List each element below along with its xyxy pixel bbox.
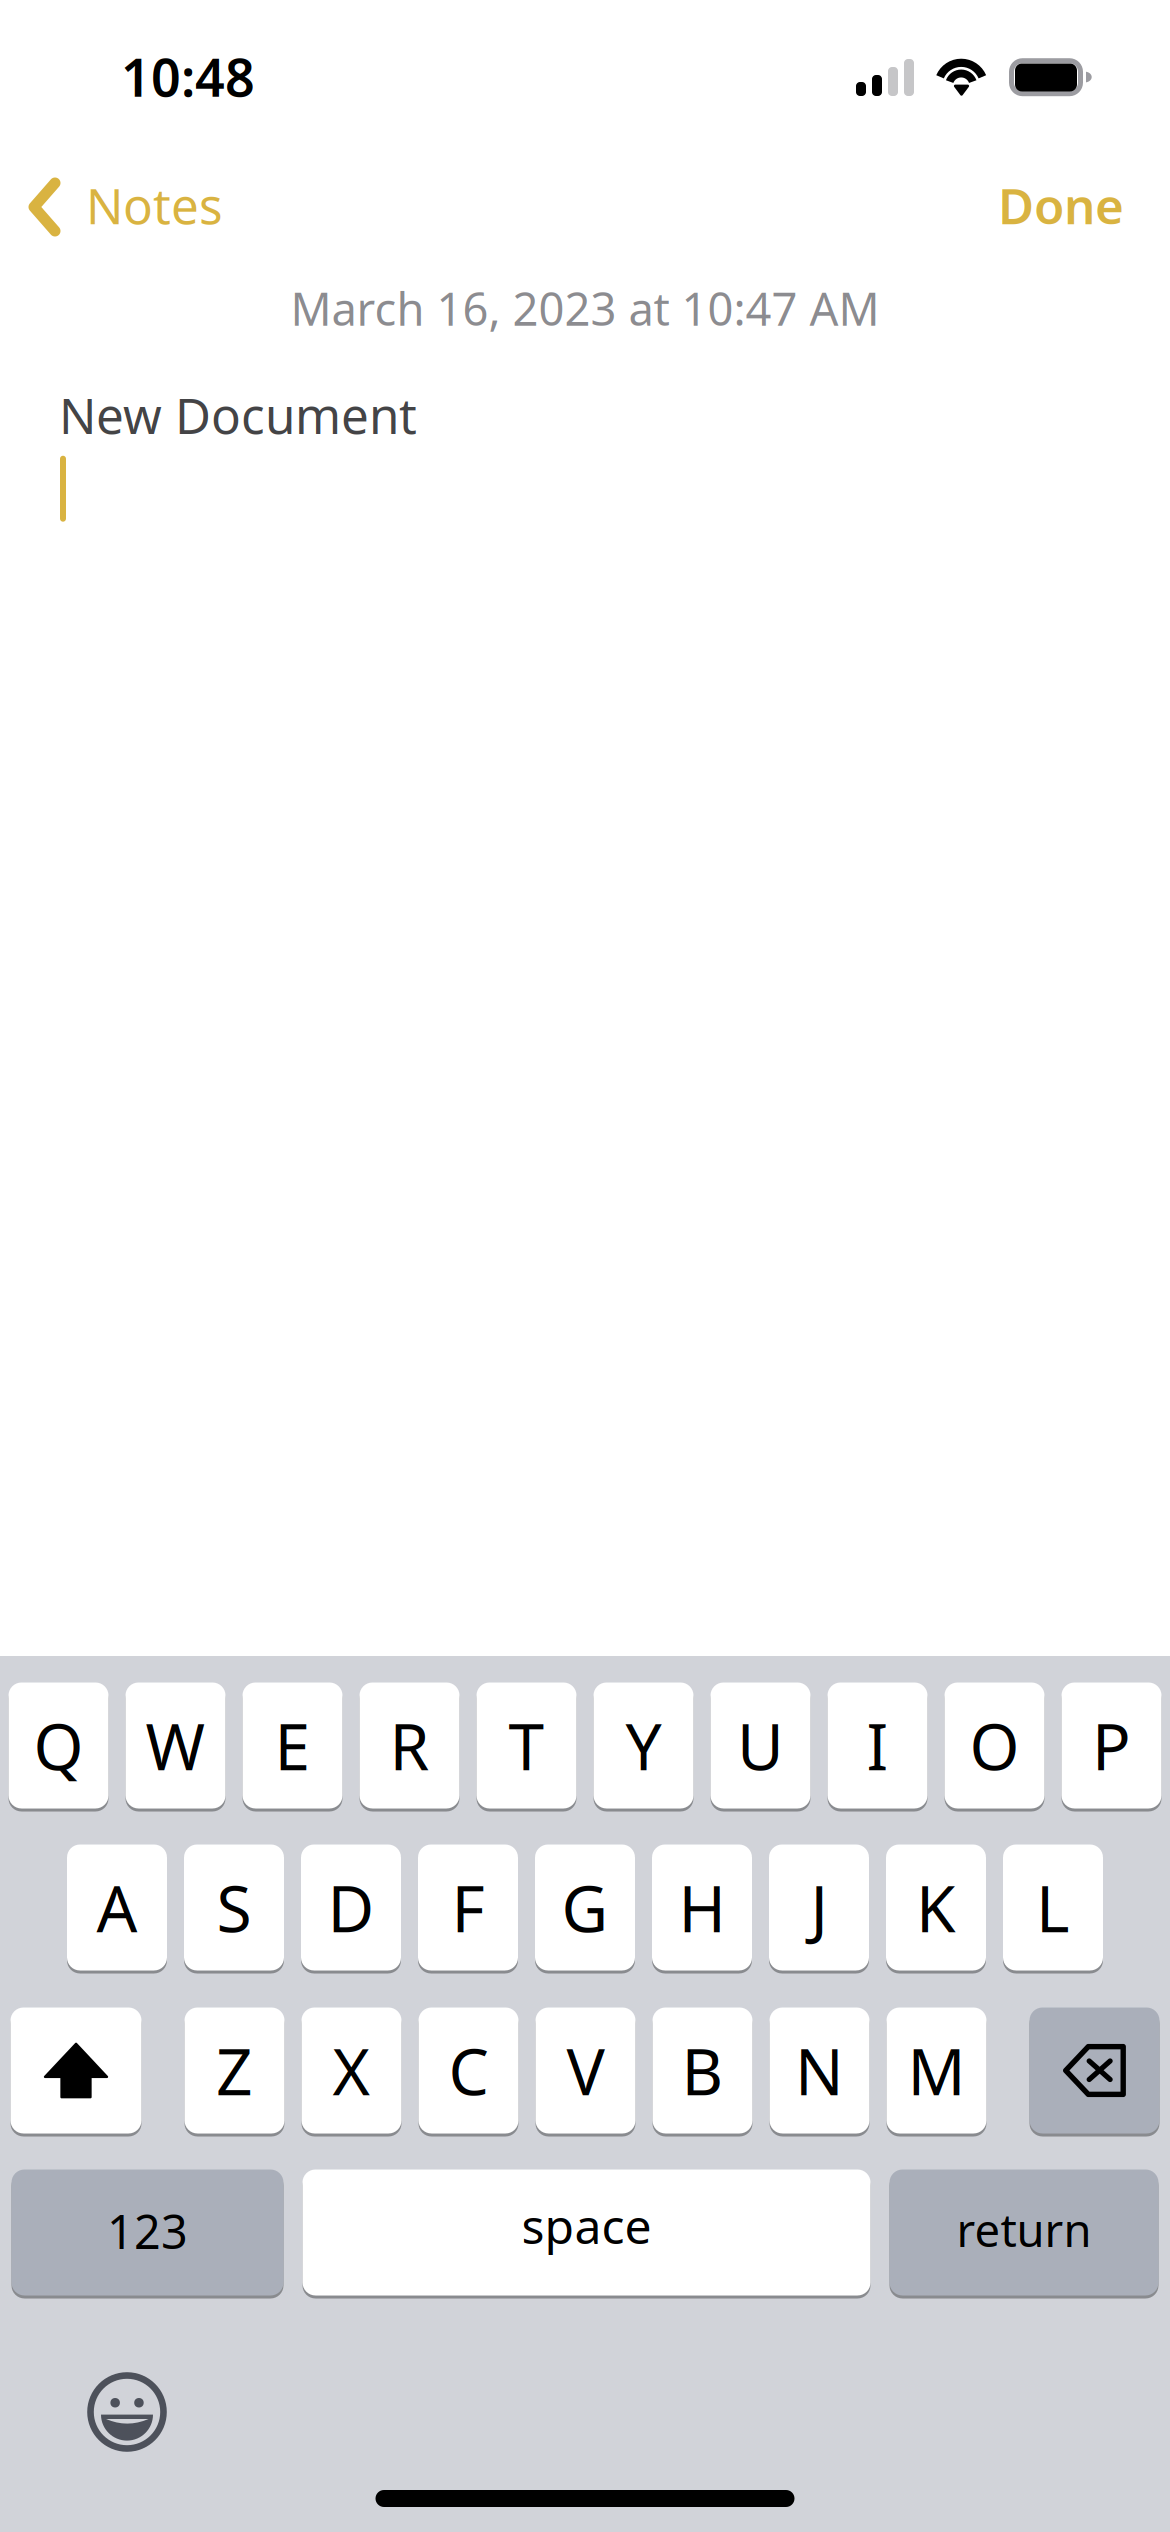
staticText: V <box>566 2028 604 2113</box>
button[interactable]: G <box>535 1843 635 1972</box>
button[interactable]: S <box>184 1843 284 1972</box>
button[interactable]: O <box>944 1681 1044 1810</box>
button[interactable]: B <box>652 2006 752 2135</box>
staticText: P <box>1092 1703 1131 1788</box>
staticText: Z <box>216 2028 253 2113</box>
staticText: A <box>96 1865 137 1950</box>
staticText: E <box>274 1703 310 1788</box>
staticText: W <box>145 1703 205 1788</box>
button[interactable]: V <box>535 2006 635 2135</box>
staticText: Done <box>998 172 1124 238</box>
staticText: Q <box>33 1703 83 1788</box>
button[interactable]: Q <box>8 1681 108 1810</box>
staticText: March 16, 2023 at 10:47 AM <box>290 278 879 338</box>
staticText: G <box>561 1865 608 1950</box>
staticText: C <box>448 2028 488 2113</box>
button[interactable]: U <box>710 1681 810 1810</box>
button[interactable]: space <box>302 2168 870 2297</box>
button[interactable]: T <box>476 1681 576 1810</box>
button[interactable]: C <box>418 2006 518 2135</box>
button[interactable]: Delete <box>1029 2006 1159 2135</box>
staticText: X <box>332 2028 370 2113</box>
staticText: N <box>795 2028 844 2113</box>
staticText: U <box>737 1703 784 1788</box>
button[interactable]: P <box>1061 1681 1161 1810</box>
staticText: 10:48 <box>121 42 255 111</box>
staticText: F <box>451 1865 484 1950</box>
button[interactable]: K <box>886 1843 986 1972</box>
button[interactable]: 123 <box>11 2168 283 2297</box>
button[interactable]: M <box>886 2006 986 2135</box>
button[interactable]: Done <box>974 141 1170 273</box>
button[interactable]: D <box>301 1843 401 1972</box>
button[interactable]: R <box>359 1681 459 1810</box>
staticText: O <box>969 1703 1019 1788</box>
staticText: R <box>389 1703 429 1788</box>
button[interactable]: Y <box>593 1681 693 1810</box>
button[interactable]: W <box>125 1681 225 1810</box>
staticText: space <box>521 2194 651 2257</box>
button[interactable]: Z <box>184 2006 284 2135</box>
staticText: K <box>916 1865 956 1950</box>
button[interactable]: F <box>418 1843 518 1972</box>
staticText: S <box>216 1865 251 1950</box>
button[interactable]: N <box>769 2006 869 2135</box>
staticText: D <box>327 1865 374 1950</box>
button[interactable]: H <box>652 1843 752 1972</box>
staticText: H <box>678 1865 725 1950</box>
button[interactable]: Shift <box>10 2006 141 2135</box>
button[interactable]: A <box>67 1843 167 1972</box>
staticText: Notes <box>86 172 223 238</box>
staticText: I <box>866 1703 888 1788</box>
button[interactable]: Emoji keyboard <box>87 2372 167 2452</box>
staticText: L <box>1036 1865 1070 1950</box>
button[interactable]: I <box>827 1681 927 1810</box>
button[interactable]: L <box>1003 1843 1103 1972</box>
staticText: 123 <box>107 2200 188 2262</box>
button[interactable]: E <box>242 1681 342 1810</box>
button[interactable]: X <box>301 2006 401 2135</box>
button[interactable]: Notes <box>0 141 243 273</box>
button[interactable]: return <box>889 2168 1158 2297</box>
staticText: J <box>810 1865 827 1950</box>
staticText: B <box>681 2028 723 2113</box>
staticText: return <box>956 2199 1091 2260</box>
staticText: M <box>907 2028 965 2113</box>
button[interactable]: J <box>769 1843 869 1972</box>
staticText: Y <box>625 1703 661 1788</box>
staticText: New Document <box>59 382 417 448</box>
staticText: T <box>508 1703 544 1788</box>
